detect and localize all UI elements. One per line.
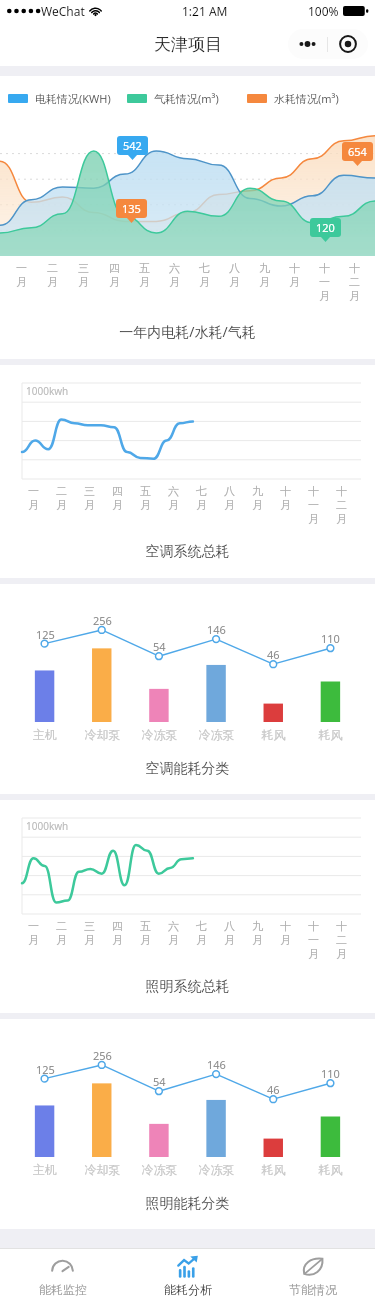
staticText: 八 [229,261,240,275]
staticText: 542 [123,138,142,153]
staticText: 月 [229,275,240,289]
staticText: 十 [336,919,347,933]
staticText: 月 [56,498,67,512]
staticText: 七 [196,484,207,498]
button[interactable]: 能耗监控 [0,1249,125,1303]
staticText: 月 [252,498,263,512]
staticText: 九 [252,919,263,933]
staticText: 46 [267,1082,280,1097]
staticText: 654 [348,144,367,159]
staticText: 二 [47,261,58,275]
staticText: 146 [207,622,226,637]
staticText: 月 [112,933,123,947]
staticText: 月 [28,498,39,512]
staticText: 冷冻泵 [188,1162,245,1177]
staticText: 十 [336,484,347,498]
staticText: 一 [28,484,39,498]
staticText: 十 [280,484,291,498]
staticText: 125 [36,627,55,642]
staticText: 月 [259,275,270,289]
staticText: 二 [336,933,347,947]
staticText: 月 [168,498,179,512]
staticText: 八 [224,919,235,933]
staticText: 四 [112,919,123,933]
staticText: 月 [140,933,151,947]
staticText: 二 [349,275,360,289]
staticText: 146 [207,1057,226,1072]
staticText: 十 [308,919,319,933]
staticText: 空调系统总耗 [0,543,375,561]
staticText: 月 [139,275,150,289]
staticText: 四 [112,484,123,498]
staticText: 一 [28,919,39,933]
staticText: 月 [47,275,58,289]
staticText: 照明系统总耗 [0,978,375,996]
staticText: 气耗情况(m³) [154,91,219,106]
staticText: 月 [224,933,235,947]
staticText: 耗风 [245,727,302,742]
staticText: 一 [16,261,27,275]
staticText: 一 [319,275,330,289]
staticText: 水耗情况(m³) [274,91,339,106]
staticText: 三 [84,484,95,498]
staticText: 七 [196,919,207,933]
staticText: 月 [336,947,347,961]
staticText: 天津项目 [154,34,222,55]
staticText: 一年内电耗/水耗/气耗 [0,322,375,341]
button[interactable]: Target [328,29,368,59]
staticText: 六 [168,484,179,498]
staticText: 二 [56,484,67,498]
staticText: 54 [153,639,166,654]
staticText: 月 [196,933,207,947]
staticText: 节能情况 [289,1282,337,1297]
staticText: 耗风 [302,727,359,742]
staticText: 月 [140,498,151,512]
staticText: 六 [169,261,180,275]
staticText: 1000kwh [26,384,69,398]
staticText: 135 [122,201,141,216]
staticText: 五 [140,484,151,498]
staticText: 1:21 AM [182,3,228,19]
staticText: 月 [84,933,95,947]
staticText: 月 [280,498,291,512]
staticText: 月 [319,289,330,303]
staticText: 耗风 [302,1162,359,1177]
staticText: 七 [199,261,210,275]
staticText: 月 [308,947,319,961]
staticText: 46 [267,647,280,662]
button[interactable]: 能耗分析 [125,1249,250,1303]
staticText: 九 [252,484,263,498]
staticText: 能耗分析 [164,1282,212,1297]
staticText: 二 [336,498,347,512]
staticText: 125 [36,1062,55,1077]
staticText: 月 [56,933,67,947]
staticText: 十 [289,261,300,275]
staticText: 主机 [16,1162,74,1177]
staticText: 54 [153,1074,166,1089]
staticText: 月 [169,275,180,289]
staticText: 月 [289,275,300,289]
staticText: 十 [319,261,330,275]
staticText: 六 [168,919,179,933]
staticText: 256 [93,1048,112,1063]
staticText: 月 [78,275,89,289]
staticText: 九 [259,261,270,275]
staticText: 1000kwh [26,819,69,833]
staticText: 256 [93,613,112,628]
staticText: 月 [28,933,39,947]
staticText: 110 [321,631,340,646]
staticText: 100% [308,3,339,19]
staticText: 二 [56,919,67,933]
staticText: WeChat [41,3,85,19]
staticText: 五 [139,261,150,275]
button[interactable]: 节能情况 [250,1249,375,1303]
staticText: 冷却泵 [74,1162,131,1177]
staticText: 月 [112,498,123,512]
staticText: 电耗情况(KWH) [35,91,111,106]
staticText: 冷冻泵 [131,727,188,742]
staticText: 110 [321,1066,340,1081]
button[interactable]: More [288,29,327,59]
staticText: 月 [109,275,120,289]
staticText: 能耗监控 [39,1282,87,1297]
staticText: 四 [109,261,120,275]
